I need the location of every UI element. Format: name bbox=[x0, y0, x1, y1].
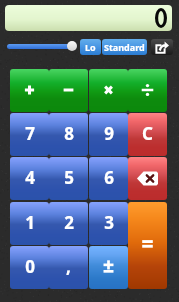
button[interactable]: Lo bbox=[80, 39, 101, 55]
button[interactable]: Divide bbox=[128, 69, 167, 112]
button[interactable]: 2 bbox=[49, 202, 88, 245]
staticText: 0 bbox=[25, 255, 35, 278]
button[interactable]: Multiply bbox=[89, 69, 128, 112]
button[interactable]: 7 bbox=[10, 113, 49, 156]
staticText: 7 bbox=[25, 122, 35, 145]
button[interactable]: 1 bbox=[10, 202, 49, 245]
staticText: 8 bbox=[64, 122, 74, 145]
staticText: C bbox=[142, 122, 153, 145]
staticText: 5 bbox=[64, 166, 74, 189]
button[interactable]: Standard bbox=[102, 39, 147, 55]
staticText: 6 bbox=[104, 166, 114, 189]
button[interactable]: 0 bbox=[10, 246, 49, 289]
staticText: Standard bbox=[104, 41, 145, 53]
button[interactable]: Precision slider bbox=[7, 44, 75, 49]
button[interactable]: Share bbox=[151, 39, 173, 55]
button[interactable]: , bbox=[49, 246, 88, 289]
button[interactable]: 4 bbox=[10, 157, 49, 200]
button[interactable]: 8 bbox=[49, 113, 88, 156]
staticText: , bbox=[66, 255, 71, 278]
button[interactable]: Delete bbox=[128, 157, 167, 200]
button[interactable]: C bbox=[128, 113, 167, 156]
staticText: 3 bbox=[104, 211, 114, 234]
button[interactable]: 9 bbox=[89, 113, 128, 156]
staticText: 4 bbox=[25, 166, 35, 189]
button[interactable]: Equals bbox=[128, 202, 167, 289]
staticText: 9 bbox=[104, 122, 114, 145]
button[interactable]: PlusMinus bbox=[89, 246, 128, 289]
button[interactable]: Minus bbox=[49, 69, 88, 112]
staticText: 2 bbox=[64, 211, 74, 234]
staticText: 1 bbox=[25, 211, 35, 234]
button[interactable]: 3 bbox=[89, 202, 128, 245]
button[interactable]: 5 bbox=[49, 157, 88, 200]
staticText: Lo bbox=[85, 41, 96, 53]
button[interactable]: Plus bbox=[10, 69, 49, 112]
button[interactable]: 6 bbox=[89, 157, 128, 200]
